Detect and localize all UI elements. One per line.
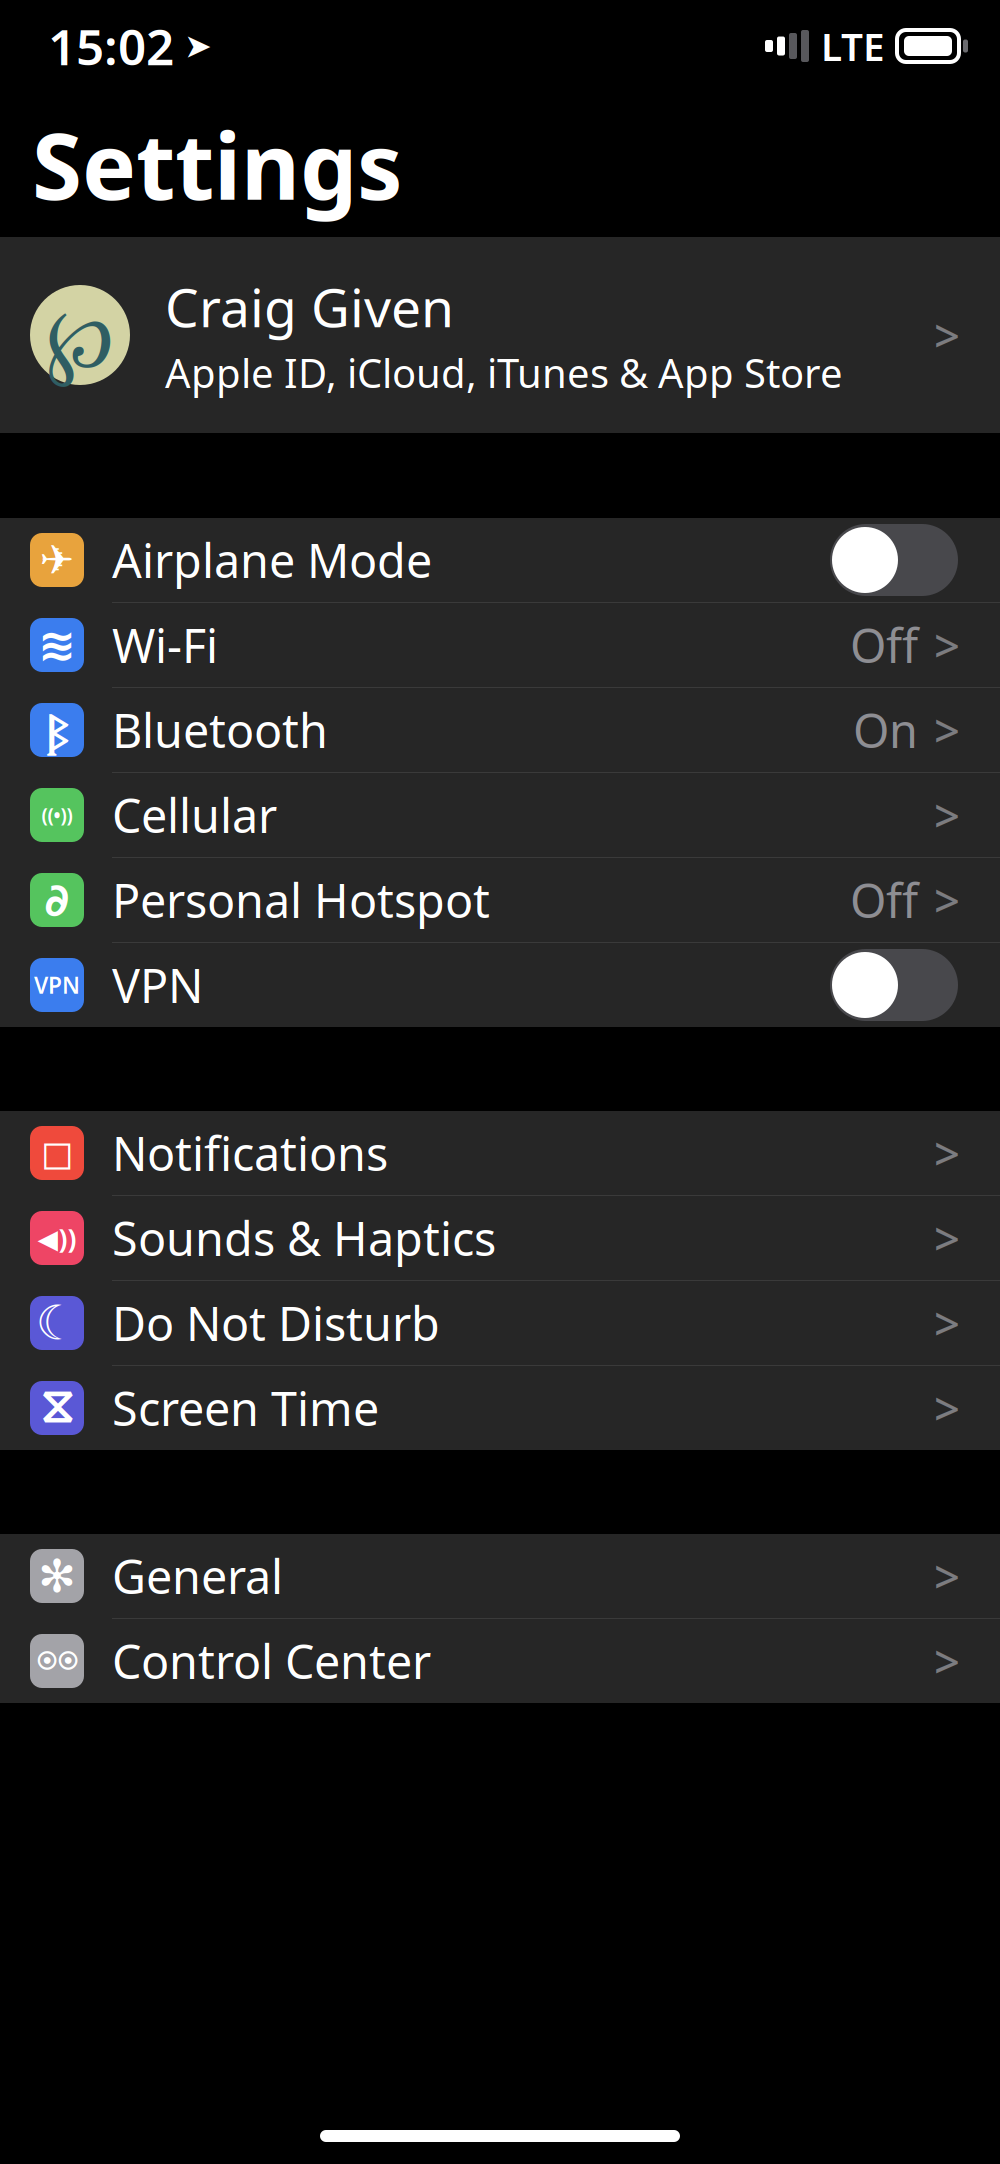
staticText: ☾ [35,1296,78,1350]
staticText: Control Center [112,1630,431,1692]
staticText: > [934,700,960,760]
staticText: VPN [112,954,203,1016]
staticText: Sounds & Haptics [112,1207,496,1269]
staticText: ≋ [38,619,76,671]
button[interactable]: ✻ [0,1534,1000,1618]
button[interactable]: ◀)) [0,1196,1000,1280]
staticText: Wi-Fi [112,614,218,676]
staticText: ᛒ [45,701,68,758]
staticText: General [112,1545,283,1607]
staticText: ⧖ [40,1385,74,1431]
staticText: Bluetooth [112,699,328,761]
button[interactable]: ᛒ [0,688,1000,772]
button[interactable]: ⦿⦿ [0,1619,1000,1703]
staticText: Craig Given [165,271,454,342]
staticText: > [934,1378,960,1438]
staticText: Airplane Mode [112,529,432,591]
button[interactable]: ℘ [0,237,1000,433]
staticText: ✻ [38,1550,76,1602]
staticText: ➤ [184,27,212,65]
staticText: > [934,870,960,930]
staticText: > [934,785,960,845]
staticText: Apple ID, iCloud, iTunes & App Store [165,346,843,399]
staticText: > [934,305,960,365]
staticText: 15:02 [48,13,174,79]
button[interactable]: ☾ [0,1281,1000,1365]
staticText: ℘ [45,280,114,390]
staticText: Off [850,869,918,931]
staticText: Screen Time [112,1377,379,1439]
button[interactable]: ((•)) [0,773,1000,857]
staticText: ∂ [44,874,69,926]
staticText: ⦿⦿ [36,1651,78,1671]
button[interactable]: ✈ [0,518,1000,602]
staticText: Personal Hotspot [112,869,490,931]
staticText: > [934,1546,960,1606]
staticText: Cellular [112,784,277,846]
staticText: > [934,1631,960,1691]
staticText: ◀)) [37,1220,76,1256]
staticText: Notifications [112,1122,388,1184]
staticText: Settings [32,104,403,225]
staticText: ((•)) [41,803,72,827]
staticText: ✈ [39,536,74,583]
staticText: VPN [34,970,80,1000]
staticText: > [934,1208,960,1268]
staticText: Off [850,614,918,676]
staticText: On [853,699,918,761]
button[interactable]: ⧖ [0,1366,1000,1450]
button[interactable]: VPN [0,943,1000,1027]
button[interactable]: ∂ [0,858,1000,942]
staticText: > [934,615,960,675]
staticText: > [934,1123,960,1183]
staticText: Do Not Disturb [112,1292,440,1354]
button[interactable]: ◻ [0,1111,1000,1195]
staticText: LTE [821,20,885,72]
staticText: > [934,1293,960,1353]
button[interactable]: ≋ [0,603,1000,687]
staticText: ◻ [40,1130,73,1176]
